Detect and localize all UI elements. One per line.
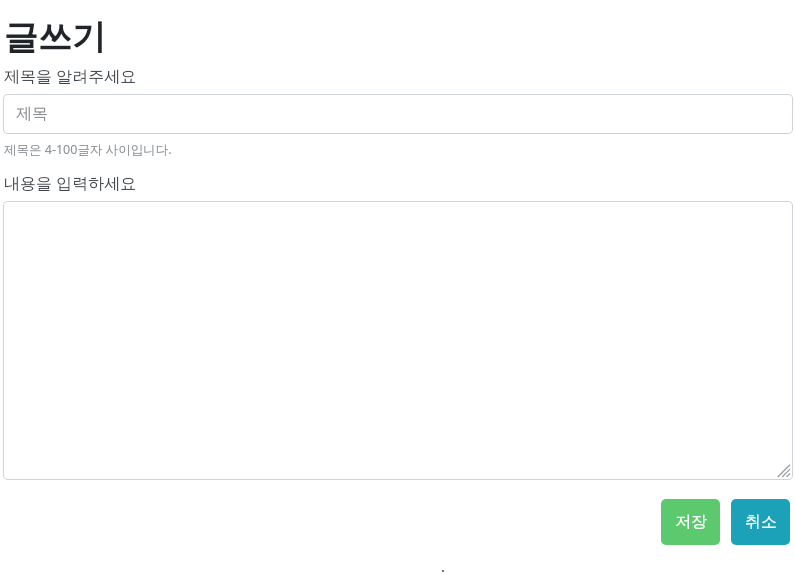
staticText: 글쓰기 <box>4 16 106 59</box>
staticText: 저장 <box>675 512 707 532</box>
button[interactable]: 저장 <box>661 499 720 545</box>
button[interactable]: 취소 <box>731 499 790 545</box>
other: Resize text area <box>777 464 791 478</box>
staticText: 제목은 4-100글자 사이입니다. <box>4 141 172 158</box>
staticText: 내용을 입력하세요 <box>4 172 137 194</box>
button[interactable]: Resize text area <box>3 201 793 480</box>
staticText: 제목 <box>16 104 48 124</box>
staticText: 취소 <box>745 512 777 532</box>
button[interactable]: 제목 <box>3 94 793 134</box>
staticText: 제목을 알려주세요 <box>4 65 137 87</box>
